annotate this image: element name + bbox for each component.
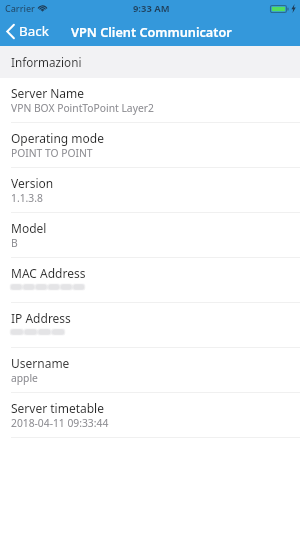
staticText: MAC Address <box>11 265 86 281</box>
button[interactable]: IP Address <box>0 303 300 348</box>
staticText: B <box>11 236 18 250</box>
staticText: Version <box>11 175 54 191</box>
staticText: Carrier <box>5 2 35 14</box>
staticText: POINT TO POINT <box>11 146 93 160</box>
staticText: Username <box>11 355 70 371</box>
button[interactable]: Server Name <box>0 78 300 123</box>
staticText: 9:33 AM <box>133 2 170 15</box>
staticText: Server timetable <box>11 400 104 416</box>
staticText: Informazioni <box>11 54 82 70</box>
staticText: 1.1.3.8 <box>11 191 43 205</box>
button[interactable]: Server timetable <box>0 393 300 438</box>
staticText: Operating mode <box>11 130 104 146</box>
staticText: Back <box>19 22 49 40</box>
button[interactable]: Back <box>0 19 57 43</box>
staticText: Server Name <box>11 85 85 101</box>
button[interactable]: Username <box>0 348 300 393</box>
staticText: apple <box>11 371 38 385</box>
button[interactable]: Version <box>0 168 300 213</box>
staticText: VPN BOX PointToPoint Layer2 <box>11 101 154 115</box>
staticText: IP Address <box>11 310 71 326</box>
button[interactable]: MAC Address <box>0 258 300 303</box>
staticText: Model <box>11 220 47 236</box>
staticText: VPN Client Communicator <box>71 23 232 40</box>
staticText: 2018-04-11 09:33:44 <box>11 416 109 430</box>
button[interactable]: Operating mode <box>0 123 300 168</box>
button[interactable]: Model <box>0 213 300 258</box>
